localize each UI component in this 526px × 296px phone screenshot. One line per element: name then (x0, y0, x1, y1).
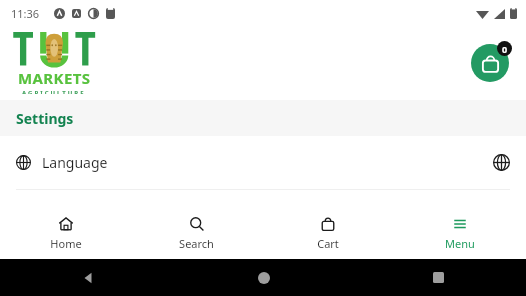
staticText: Search (179, 236, 214, 251)
staticText: AGRICULTURE (22, 89, 86, 94)
staticText: Settings (16, 109, 74, 128)
staticText: Home (50, 236, 82, 251)
button[interactable]: Menu (394, 207, 526, 259)
button[interactable]: Cart (262, 207, 394, 259)
staticText: Cart (317, 236, 339, 251)
staticText: 0 (502, 43, 508, 55)
staticText: Language (42, 153, 108, 172)
button[interactable]: Cart (471, 44, 509, 82)
staticText: MARKETS (18, 68, 91, 88)
staticText: 11:36 (11, 6, 40, 21)
staticText: Menu (445, 236, 475, 251)
button[interactable]: Language (0, 136, 526, 189)
button[interactable]: Home (0, 207, 131, 259)
button[interactable]: Search (131, 207, 262, 259)
